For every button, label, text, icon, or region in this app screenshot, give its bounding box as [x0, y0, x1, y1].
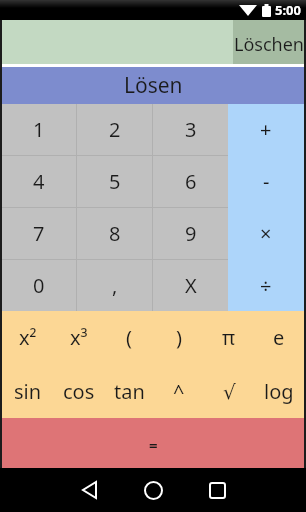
- button[interactable]: [193, 468, 241, 512]
- staticText: 5:00: [275, 1, 301, 19]
- button[interactable]: [129, 468, 177, 512]
- button[interactable]: ,: [77, 260, 152, 311]
- button[interactable]: +: [228, 104, 304, 155]
- button[interactable]: tan: [104, 364, 154, 418]
- staticText: e: [273, 324, 285, 351]
- button[interactable]: 1: [2, 104, 76, 155]
- button[interactable]: -: [228, 155, 304, 207]
- staticText: 6: [185, 168, 197, 195]
- button[interactable]: x²: [2, 311, 53, 364]
- button[interactable]: ÷: [228, 259, 304, 311]
- staticText: 5: [109, 168, 121, 195]
- staticText: X: [185, 272, 197, 299]
- staticText: ÷: [260, 272, 272, 299]
- button[interactable]: 5: [77, 156, 152, 207]
- staticText: sin: [14, 378, 42, 405]
- button[interactable]: X: [153, 260, 228, 311]
- button[interactable]: 0: [2, 260, 76, 311]
- staticText: ^: [173, 378, 185, 405]
- button[interactable]: sin: [2, 364, 53, 418]
- button[interactable]: e: [254, 311, 304, 364]
- staticText: ,: [112, 272, 118, 299]
- button[interactable]: ): [154, 311, 204, 364]
- staticText: x³: [70, 324, 88, 351]
- staticText: (: [126, 324, 132, 351]
- staticText: 0: [33, 272, 45, 299]
- button[interactable]: log: [254, 364, 304, 418]
- staticText: cos: [63, 378, 95, 405]
- staticText: log: [264, 378, 294, 405]
- staticText: tan: [114, 378, 145, 405]
- button[interactable]: π: [204, 311, 254, 364]
- button[interactable]: ^: [154, 364, 204, 418]
- staticText: ): [176, 324, 182, 351]
- staticText: √: [223, 380, 236, 403]
- button[interactable]: Lösen: [2, 67, 304, 104]
- staticText: 8: [109, 220, 121, 247]
- button[interactable]: =: [2, 418, 304, 468]
- button[interactable]: 7: [2, 208, 76, 259]
- button[interactable]: 6: [153, 156, 228, 207]
- staticText: Löschen: [234, 32, 304, 57]
- button[interactable]: Löschen: [233, 20, 304, 64]
- button[interactable]: [65, 468, 113, 512]
- staticText: +: [260, 116, 272, 143]
- button[interactable]: √: [204, 364, 254, 418]
- staticText: π: [222, 324, 236, 351]
- button[interactable]: 3: [153, 104, 228, 155]
- staticText: 9: [185, 220, 197, 247]
- staticText: 2: [109, 116, 121, 143]
- staticText: -: [263, 168, 270, 195]
- button[interactable]: cos: [53, 364, 104, 418]
- button[interactable]: ×: [228, 207, 304, 259]
- staticText: Lösen: [124, 71, 183, 100]
- staticText: ×: [260, 220, 272, 247]
- button[interactable]: 2: [77, 104, 152, 155]
- staticText: 4: [33, 168, 45, 195]
- button[interactable]: 8: [77, 208, 152, 259]
- button[interactable]: 4: [2, 156, 76, 207]
- button[interactable]: (: [104, 311, 154, 364]
- button[interactable]: 9: [153, 208, 228, 259]
- button[interactable]: x³: [53, 311, 104, 364]
- staticText: =: [149, 435, 158, 455]
- staticText: 1: [33, 116, 45, 143]
- staticText: 3: [185, 116, 197, 143]
- staticText: x²: [19, 324, 37, 351]
- staticText: 7: [33, 220, 45, 247]
